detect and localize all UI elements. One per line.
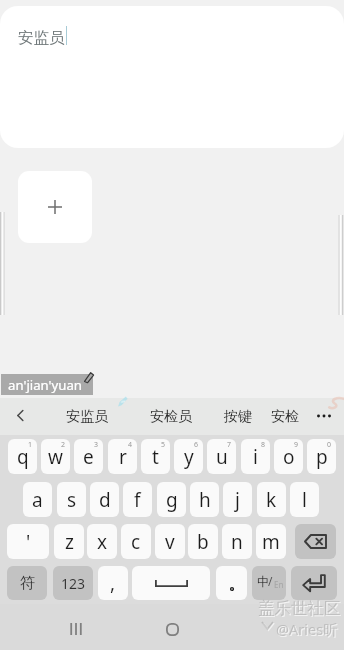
staticText: g [166, 487, 178, 513]
button[interactable]: e [74, 439, 103, 474]
button[interactable]: i [241, 439, 270, 474]
button[interactable]: 安检 [268, 400, 302, 434]
button[interactable]: u [207, 439, 236, 474]
button[interactable]: c [121, 524, 151, 559]
button[interactable]: 按键 [220, 400, 255, 434]
button[interactable]: v [155, 524, 185, 559]
staticText: v [165, 529, 175, 555]
staticText: c [131, 529, 141, 555]
staticText: x [97, 529, 108, 555]
button[interactable]: an'jian'yuan [1, 374, 93, 395]
button[interactable]: Add [18, 171, 92, 243]
staticText: r [119, 444, 127, 470]
button[interactable]: r [108, 439, 137, 474]
staticText: 安检员 [150, 408, 192, 426]
staticText: 2 [61, 440, 66, 450]
staticText: 4 [128, 440, 133, 450]
button[interactable]: Space [132, 566, 210, 600]
staticText: t [152, 444, 159, 470]
button[interactable]: d [90, 482, 119, 517]
staticText: f [134, 487, 141, 513]
staticText: i [253, 444, 258, 470]
staticText: z [65, 529, 74, 555]
staticText: 安检 [271, 408, 299, 426]
staticText: @Aries昕 [276, 619, 338, 639]
button[interactable]: More options [309, 399, 338, 433]
button[interactable]: n [222, 524, 252, 559]
staticText: 安监员 [66, 408, 108, 426]
button[interactable]: h [190, 482, 219, 517]
staticText: an'jian'yuan [8, 376, 82, 394]
other: Edit [83, 371, 95, 383]
button[interactable]: q [8, 439, 37, 474]
staticText: 9 [294, 440, 299, 450]
button[interactable]: a [23, 482, 52, 517]
button[interactable]: Enter [291, 566, 337, 600]
button[interactable]: b [188, 524, 218, 559]
staticText: ' [26, 529, 31, 555]
staticText: En [274, 579, 284, 590]
button[interactable]: Backspace [295, 524, 336, 559]
button[interactable]: g [157, 482, 186, 517]
staticText: b [197, 529, 209, 555]
staticText: , [110, 570, 116, 596]
button[interactable]: 安监员 [66, 400, 108, 434]
button[interactable]: 123 [53, 566, 93, 600]
staticText: @Aries昕 [277, 620, 339, 640]
staticText: 0 [327, 440, 332, 450]
button[interactable]: ' [7, 524, 49, 559]
staticText: 1 [28, 440, 33, 450]
staticText: m [262, 529, 280, 555]
staticText: q [17, 444, 29, 470]
button[interactable]: Home [148, 612, 196, 646]
button[interactable]: j [223, 482, 252, 517]
staticText: 5 [161, 440, 166, 450]
button[interactable]: 符 [7, 566, 47, 600]
button[interactable]: o [274, 439, 303, 474]
button[interactable]: s [57, 482, 86, 517]
button[interactable]: k [257, 482, 286, 517]
staticText: / [268, 573, 273, 589]
button[interactable]: , [98, 566, 128, 600]
staticText: 盖乐世社区 [259, 599, 342, 620]
button[interactable]: t [141, 439, 170, 474]
staticText: w [48, 444, 63, 470]
button[interactable]: f [123, 482, 152, 517]
button[interactable]: Recents [52, 612, 100, 646]
button[interactable]: m [256, 524, 286, 559]
staticText: e [83, 444, 94, 470]
button[interactable]: z [54, 524, 84, 559]
button[interactable]: x [87, 524, 117, 559]
staticText: h [199, 487, 211, 513]
button[interactable]: p [307, 439, 336, 474]
staticText: n [231, 529, 243, 555]
staticText: 符 [20, 574, 35, 593]
staticText: 按键 [224, 408, 252, 426]
button[interactable]: 安监员 [0, 6, 344, 148]
staticText: 中 [257, 574, 270, 590]
button[interactable]: 安检员 [147, 400, 194, 434]
button[interactable]: y [174, 439, 203, 474]
staticText: 6 [194, 440, 199, 450]
button[interactable]: w [41, 439, 70, 474]
staticText: u [216, 444, 228, 470]
staticText: j [235, 487, 240, 513]
staticText: 8 [261, 440, 266, 450]
button[interactable]: l [290, 482, 319, 517]
button[interactable]: Back [6, 398, 34, 432]
staticText: 盖乐世社区 [258, 598, 341, 619]
staticText: k [266, 487, 277, 513]
button[interactable]: Period [216, 566, 247, 600]
staticText: 7 [227, 440, 232, 450]
staticText: 123 [61, 574, 86, 593]
staticText: o [283, 444, 295, 470]
staticText: s [67, 487, 77, 513]
staticText: l [302, 487, 307, 513]
staticText: a [32, 487, 43, 513]
staticText: 安监员 [18, 28, 65, 48]
staticText: d [99, 487, 111, 513]
button[interactable]: 中 [252, 566, 286, 600]
staticText: 3 [94, 440, 99, 450]
staticText: p [316, 444, 328, 470]
staticText: y [184, 444, 194, 470]
